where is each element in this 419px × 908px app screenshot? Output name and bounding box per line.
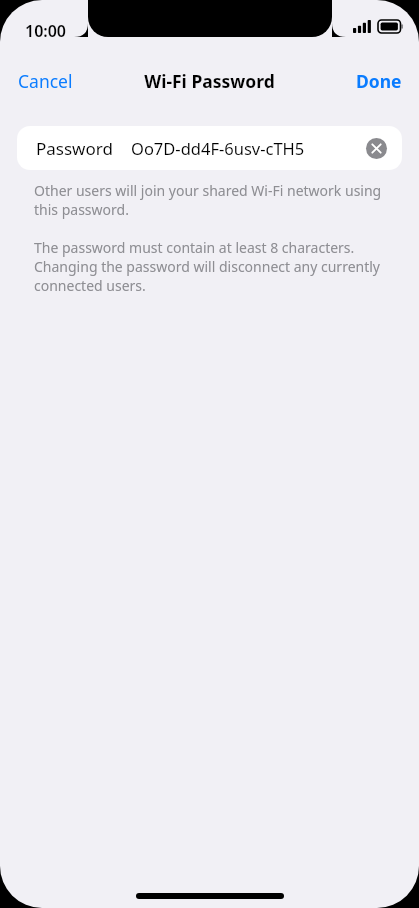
staticText: Cancel xyxy=(18,69,73,93)
button[interactable]: Password xyxy=(17,126,402,170)
staticText: The password must contain at least 8 cha… xyxy=(34,238,391,295)
staticText: Wi-Fi Password xyxy=(144,69,275,93)
button[interactable]: Cancel xyxy=(0,66,91,96)
staticText: Oo7D-dd4F-6usv-cTH5 xyxy=(131,137,305,159)
staticText: Other users will join your shared Wi-Fi … xyxy=(34,181,391,219)
button[interactable]: Clear password xyxy=(363,135,389,161)
staticText: Password xyxy=(36,137,113,160)
staticText: 10:00 xyxy=(25,20,67,42)
button[interactable]: Done xyxy=(339,66,419,96)
staticText: Done xyxy=(356,69,402,93)
